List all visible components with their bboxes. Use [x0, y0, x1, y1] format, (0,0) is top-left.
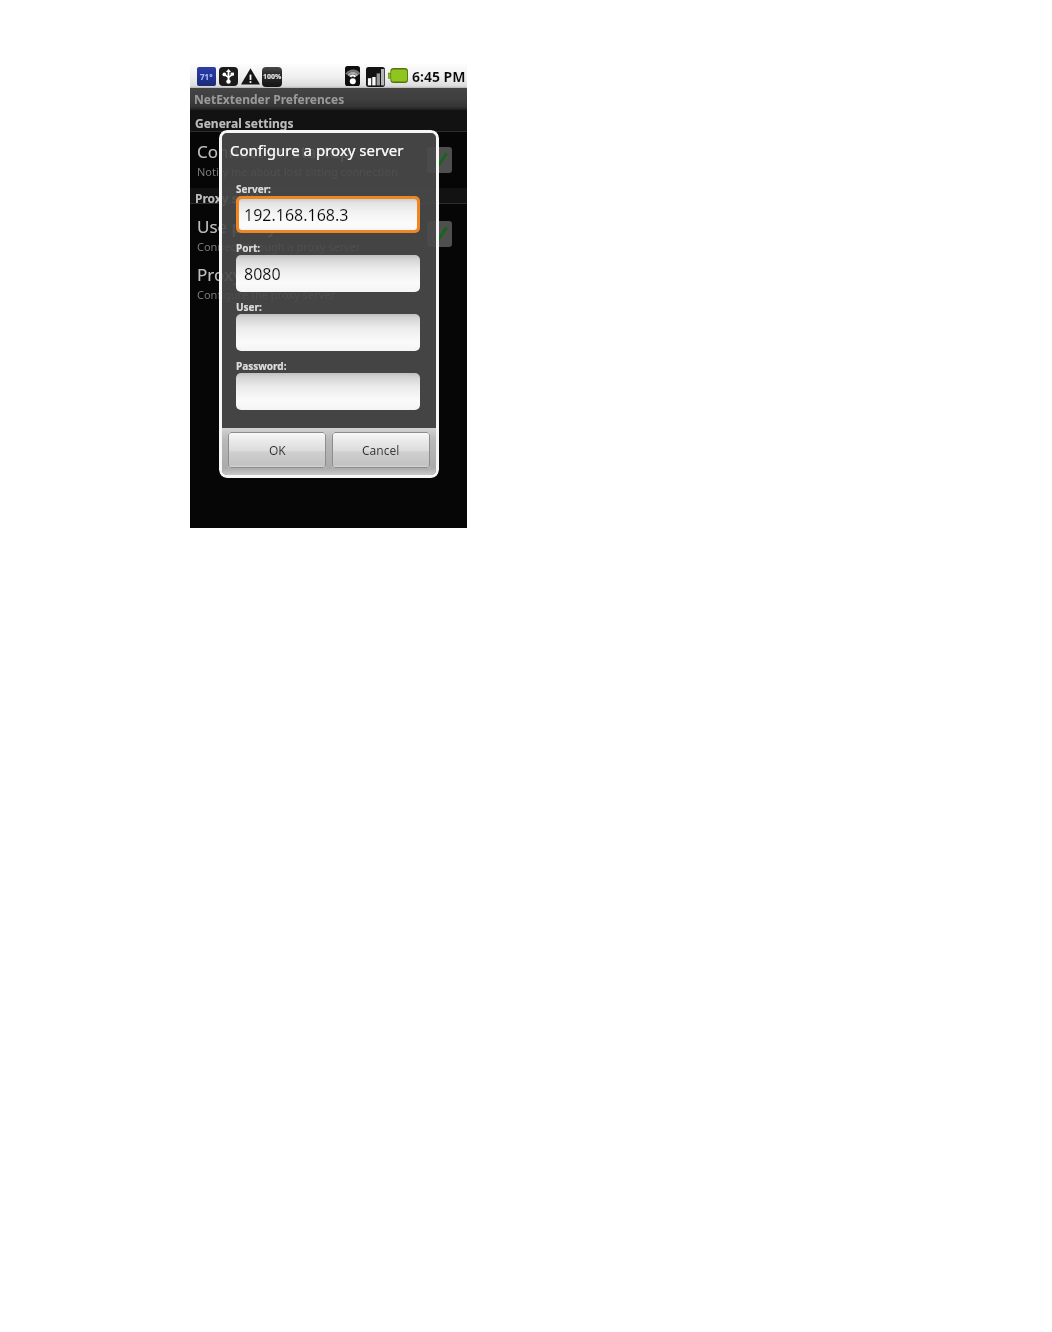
button[interactable] [236, 314, 420, 351]
staticText: 8080 [244, 263, 281, 285]
staticText: Password: [236, 359, 287, 373]
button[interactable]: 8080 [236, 255, 420, 292]
staticText: 100% [263, 72, 282, 82]
button[interactable]: 192.168.168.3 [236, 196, 420, 233]
staticText: Connect through a proxy server [197, 239, 361, 254]
staticText: 192.168.168.3 [244, 204, 349, 226]
staticText: 71° [200, 71, 213, 82]
staticText: Proxy settings [197, 263, 310, 286]
staticText: Cancel [362, 442, 400, 458]
staticText: Server: [236, 182, 271, 196]
staticText: Use proxy [197, 215, 277, 238]
staticText: NetExtender Preferences [194, 91, 345, 107]
staticText: Connect on startup [197, 140, 351, 163]
staticText: 6:45 PM [412, 67, 466, 86]
button[interactable]: OK [228, 432, 326, 468]
button[interactable] [236, 373, 420, 410]
button[interactable]: Cancel [332, 432, 430, 468]
staticText: Configure a proxy server [230, 140, 404, 160]
button[interactable]: Use proxy [190, 210, 467, 258]
staticText: Port: [236, 241, 261, 255]
button[interactable]: Toggle Use proxy [427, 221, 452, 247]
staticText: Proxy settings [195, 190, 281, 206]
button[interactable]: Toggle Connect on startup [427, 147, 452, 173]
staticText: Notify me about lost sitting connection [197, 164, 398, 179]
button[interactable]: Connect on startup [190, 131, 467, 188]
staticText: General settings [195, 115, 294, 131]
staticText: User: [236, 300, 262, 314]
staticText: OK [269, 442, 286, 458]
staticText: Configure the proxy server [197, 287, 335, 302]
button[interactable]: Proxy settings [190, 258, 467, 306]
